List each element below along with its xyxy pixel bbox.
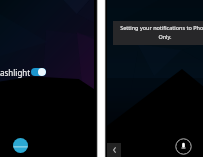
button[interactable]: Flashlight button [13,138,28,153]
staticText: Setting your notifications to Phone Only… [119,24,203,41]
button[interactable]: Back [106,143,121,157]
staticText: ashlight [0,67,31,78]
button[interactable]: Flashlight toggle [31,68,46,76]
button[interactable]: Microphone [175,138,192,155]
